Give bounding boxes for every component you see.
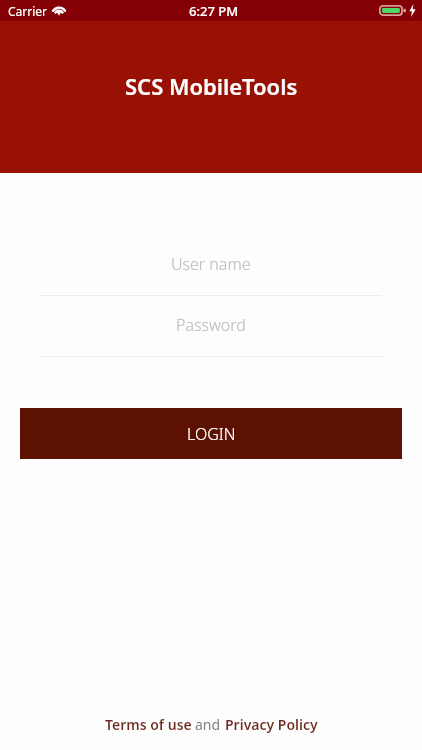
staticText: 6:27 PM: [189, 2, 239, 20]
staticText: Password: [176, 314, 246, 336]
button[interactable]: Privacy Policy: [225, 715, 318, 734]
staticText: LOGIN: [187, 423, 236, 445]
staticText: Privacy Policy: [225, 715, 318, 734]
staticText: Carrier: [8, 3, 48, 19]
staticText: Terms of use: [105, 715, 192, 734]
button[interactable]: LOGIN: [20, 408, 402, 459]
staticText: User name: [171, 253, 251, 275]
staticText: and: [195, 715, 221, 734]
button[interactable]: User name: [40, 245, 382, 296]
button[interactable]: Password: [40, 306, 382, 357]
button[interactable]: Terms of use: [105, 715, 192, 734]
staticText: SCS MobileTools: [125, 71, 298, 101]
